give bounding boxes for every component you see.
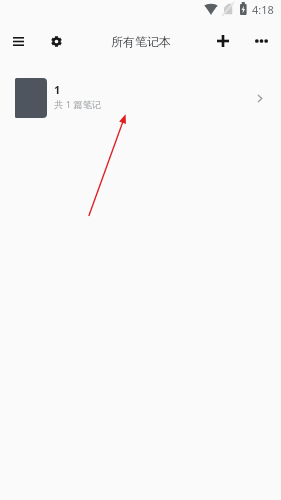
staticText: 共 1 篇笔记 bbox=[54, 98, 102, 111]
staticText: 所有笔记本 bbox=[111, 34, 171, 49]
button[interactable]: Open notebook bbox=[246, 84, 274, 112]
button[interactable]: 1 bbox=[0, 64, 281, 123]
button[interactable]: More options bbox=[247, 27, 275, 55]
staticText: 1 bbox=[54, 82, 61, 97]
button[interactable]: Add bbox=[209, 27, 237, 55]
button[interactable]: Menu bbox=[4, 27, 32, 55]
staticText: 4:18 bbox=[252, 2, 274, 17]
button[interactable]: Settings bbox=[42, 27, 70, 55]
